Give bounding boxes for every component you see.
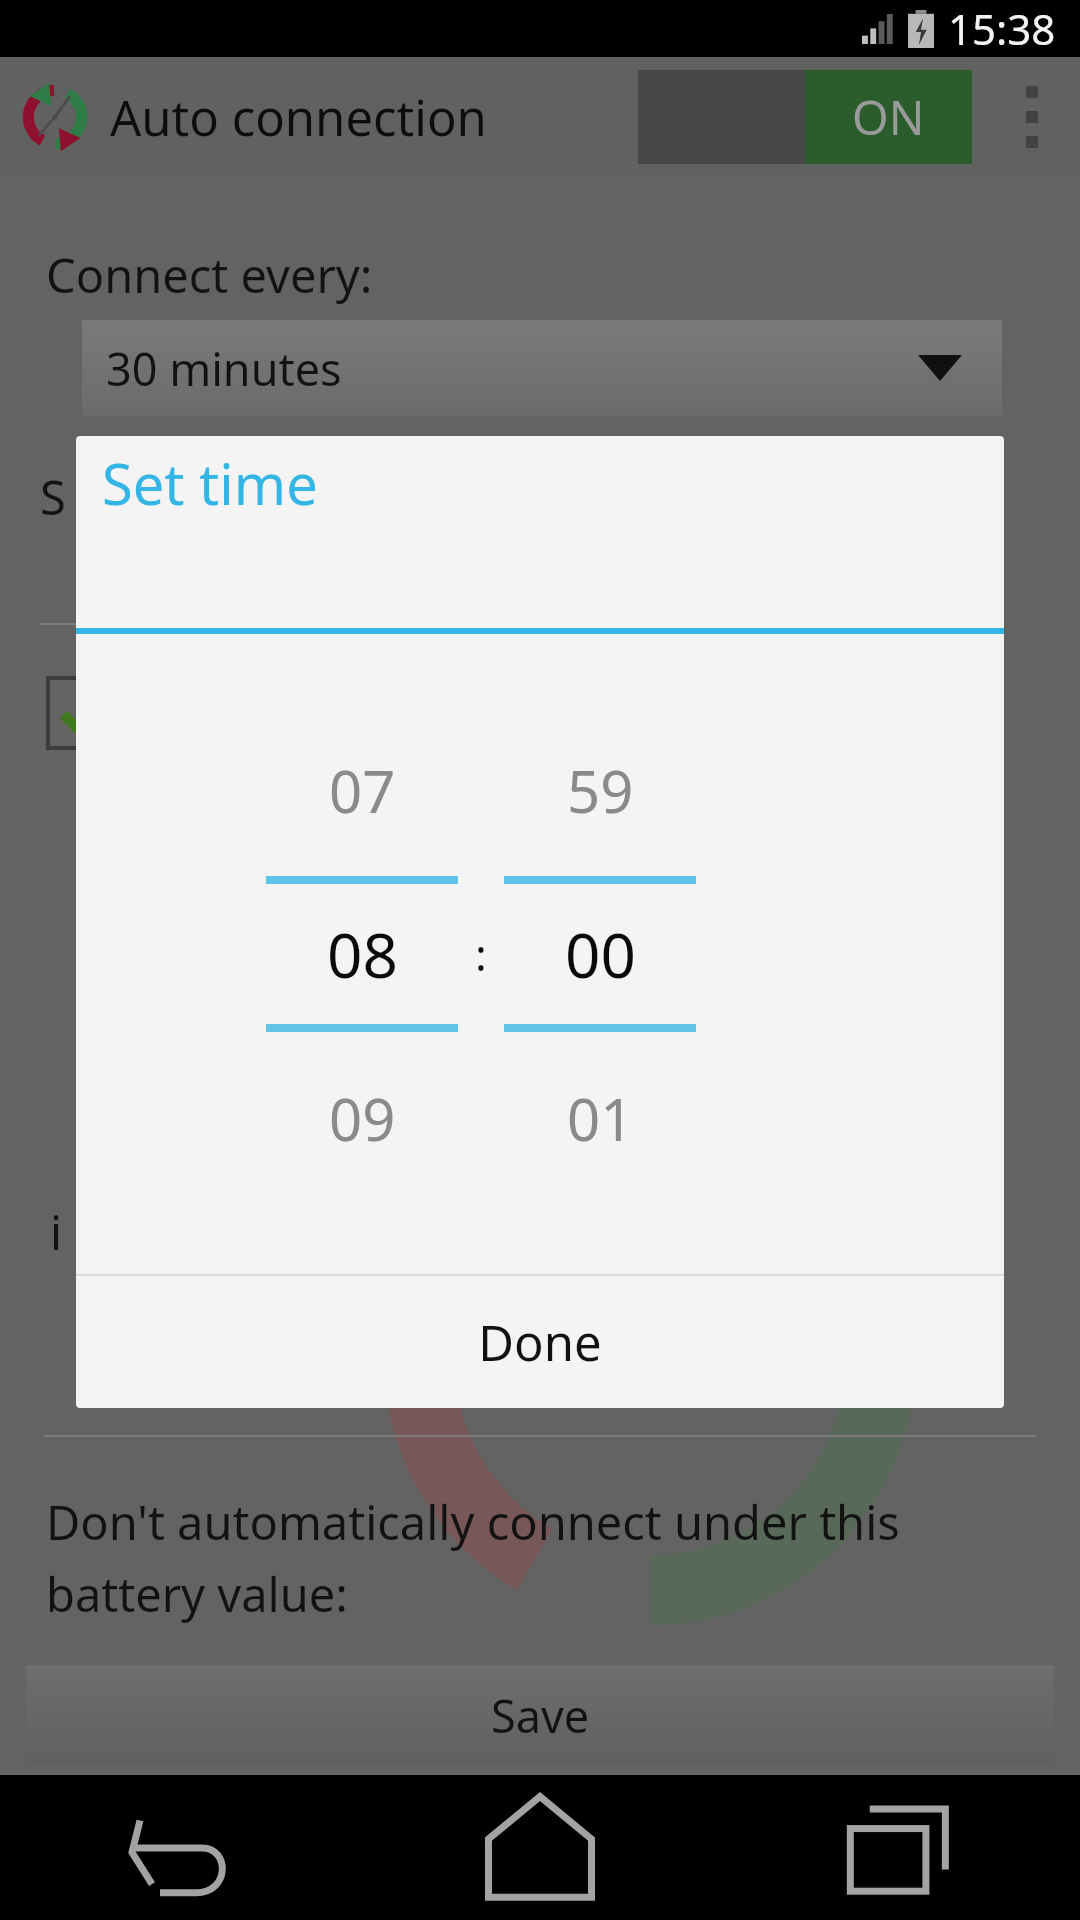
button[interactable]: 59 xyxy=(504,730,696,1178)
button[interactable]: Done xyxy=(76,1276,1004,1408)
staticText: Done xyxy=(478,1309,602,1376)
staticText: 15:38 xyxy=(948,0,1056,57)
staticText: Connect every: xyxy=(46,243,373,307)
button[interactable]: 07 xyxy=(266,730,458,1178)
staticText: ON xyxy=(852,85,925,149)
staticText: S xyxy=(40,465,66,529)
staticText: Auto connection xyxy=(110,84,487,151)
staticText: Save xyxy=(491,1685,590,1746)
staticText: 30 minutes xyxy=(106,338,342,399)
staticText: 08 xyxy=(327,912,398,996)
staticText: Don't automatically connect under this xyxy=(46,1490,900,1554)
button[interactable]: Recent apps xyxy=(720,1775,1080,1920)
staticText: Set time xyxy=(102,445,318,521)
staticText: battery value: xyxy=(46,1562,348,1626)
button[interactable]: ON xyxy=(638,70,972,164)
staticText: : xyxy=(475,924,487,984)
staticText: 59 xyxy=(567,751,634,830)
staticText: i xyxy=(50,1200,63,1264)
button[interactable]: Back xyxy=(0,1775,360,1920)
button[interactable]: More options xyxy=(1002,67,1062,167)
staticText: 07 xyxy=(329,751,396,830)
staticText: 09 xyxy=(329,1079,396,1158)
button[interactable]: Home xyxy=(360,1775,720,1920)
button[interactable]: 30 minutes xyxy=(82,320,1002,416)
button[interactable]: Save xyxy=(26,1665,1054,1765)
staticText: 01 xyxy=(567,1079,634,1158)
staticText: 00 xyxy=(565,912,636,996)
